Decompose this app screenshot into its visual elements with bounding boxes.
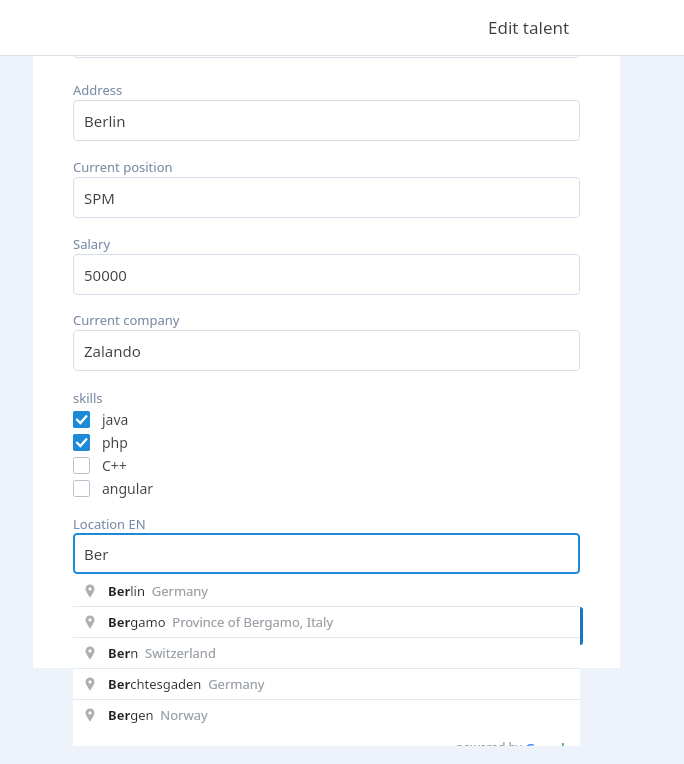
button[interactable]: Bergamo Province of Bergamo, Italy [73,607,580,637]
button[interactable]: php [73,432,263,452]
staticText: java [102,410,129,429]
staticText: php [102,433,128,452]
staticText: Berchtesgaden Germany [108,675,265,693]
button[interactable] [520,607,583,645]
staticText: Berlin [84,111,126,131]
staticText: Salary [73,235,111,253]
staticText: Zalando [84,341,141,361]
button[interactable]: Ber [73,533,580,574]
button[interactable]: SPM [73,177,580,218]
button[interactable]: C++ [73,455,263,475]
staticText: skills [73,389,103,407]
staticText: Bergen Norway [108,706,208,724]
button[interactable]: Bergen Norway [73,700,580,730]
staticText: Bergamo Province of Bergamo, Italy [108,613,334,631]
button[interactable]: Berchtesgaden Germany [73,669,580,699]
button[interactable]: Berlin [73,100,580,141]
button[interactable]: Berlin Germany [73,576,580,606]
staticText: powered by [456,739,525,746]
staticText: Google [525,739,573,746]
staticText: Current position [73,158,173,176]
button[interactable]: 50000 [73,254,580,295]
button[interactable] [73,28,580,58]
staticText: Address [73,81,123,99]
staticText: Location EN [73,515,146,533]
staticText: SPM [84,188,115,208]
staticText: Current company [73,311,180,329]
staticText: angular [102,479,154,498]
staticText: 50000 [84,265,127,285]
staticText: Edit talent [488,16,570,39]
button[interactable]: java [73,409,263,429]
staticText: Bern Switzerland [108,644,216,662]
button[interactable]: Zalando [73,330,580,371]
staticText: C++ [102,456,127,475]
staticText: Berlin Germany [108,582,208,600]
staticText: Ber [84,544,109,564]
button[interactable]: Bern Switzerland [73,638,580,668]
button[interactable]: angular [73,478,263,498]
